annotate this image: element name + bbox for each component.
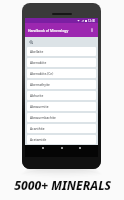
- other: Search: [29, 40, 34, 45]
- button[interactable]: Abernathyite: [27, 80, 96, 89]
- staticText: Abswurmite: [30, 105, 49, 109]
- staticText: Abenakiite-(Ce): [30, 72, 54, 76]
- staticText: 12:30: [88, 19, 96, 23]
- button[interactable]: Handbook of Mineralogy: [25, 23, 98, 37]
- button[interactable]: Acetamide: [27, 135, 96, 144]
- staticText: Abernathyite: [30, 83, 50, 87]
- button[interactable]: Abenakiite: [27, 58, 96, 67]
- staticText: Handbook of Mineralogy: [28, 28, 69, 33]
- staticText: Abenakiite: [30, 61, 47, 65]
- staticText: Acetamide: [30, 138, 47, 142]
- button[interactable]: More options: [89, 27, 95, 33]
- staticText: Acanthite: [30, 127, 45, 131]
- button[interactable]: Abswurmite: [27, 102, 96, 111]
- staticText: Abellaite: [30, 50, 44, 54]
- button[interactable]: Abenakiite-(Ce): [27, 69, 96, 78]
- button[interactable]: Abhurite: [27, 91, 96, 100]
- button[interactable]: Abswurmbachite: [27, 113, 96, 122]
- staticText: Abswurmbachite: [30, 116, 56, 120]
- button[interactable]: Abellaite: [27, 47, 96, 56]
- staticText: 5000+ MINERALS: [14, 177, 111, 193]
- button[interactable]: Search: [25, 37, 98, 47]
- button[interactable]: Acanthite: [27, 124, 96, 133]
- staticText: Abhurite: [30, 94, 44, 98]
